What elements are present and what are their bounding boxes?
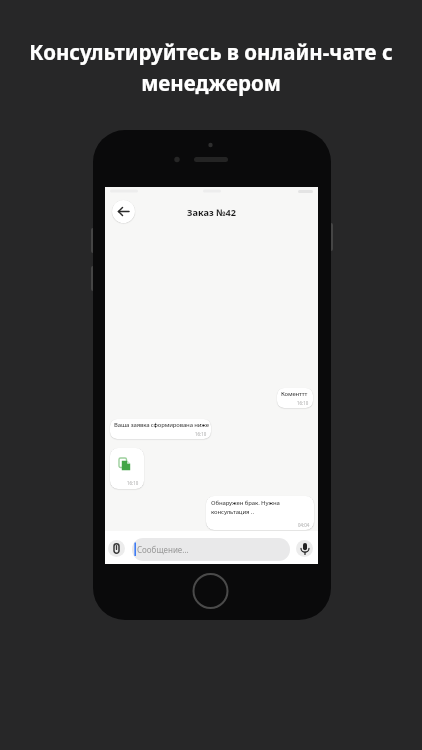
staticText: Заказ №42 (105, 206, 318, 219)
button[interactable]: Обнаружен брак. Нужна консультация .. (206, 496, 314, 530)
button[interactable] (112, 200, 135, 223)
staticText: Ваша заявка сформирована ниже (114, 421, 209, 429)
button[interactable]: Коменттт (277, 388, 313, 408)
staticText: 16:10 (195, 431, 207, 437)
button[interactable] (296, 540, 313, 557)
button[interactable] (108, 540, 125, 557)
staticText: Консультируйтесь в онлайн-чате с менедже… (29, 38, 393, 97)
staticText: Сообщение... (137, 544, 189, 555)
staticText: 04:04 (298, 522, 310, 528)
button[interactable]: Сообщение... (132, 538, 290, 561)
staticText: Обнаружен брак. Нужна консультация .. (211, 499, 280, 516)
staticText: 16:10 (297, 400, 309, 406)
staticText: 16:10 (127, 480, 139, 486)
button[interactable]: 16:10 (110, 448, 144, 489)
staticText: Коменттт (281, 390, 308, 398)
button[interactable]: Ваша заявка сформирована ниже (110, 419, 211, 439)
